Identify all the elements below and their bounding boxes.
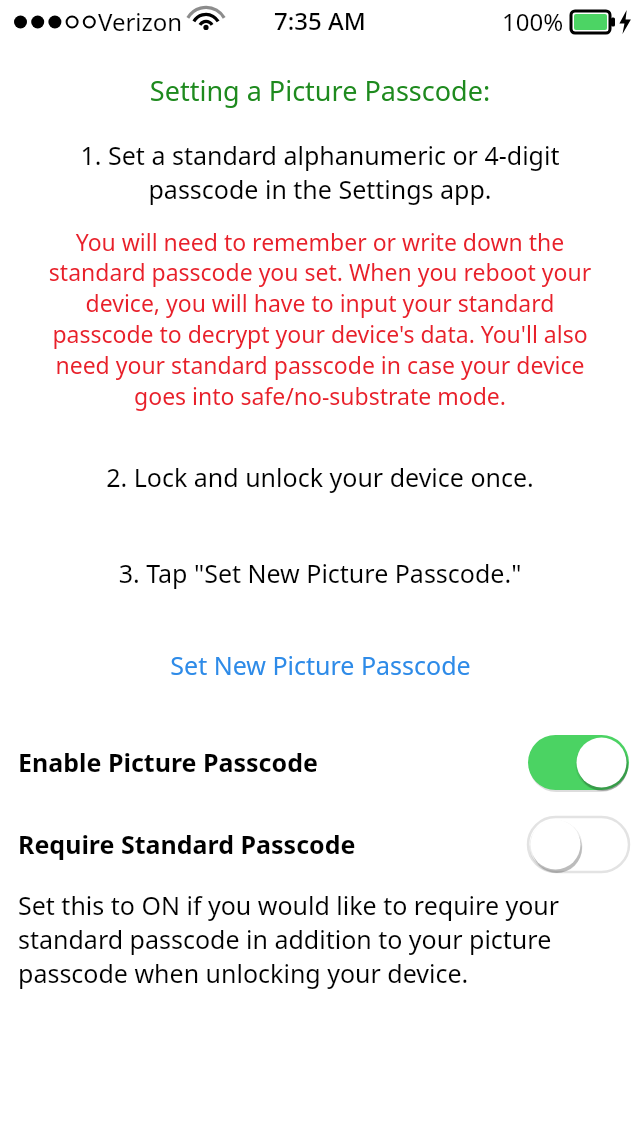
button[interactable]: Require Standard Passcode	[0, 816, 640, 872]
button[interactable]: Toggle off	[528, 817, 629, 872]
button[interactable]: Enable Picture Passcode	[0, 734, 640, 790]
button[interactable]: Set New Picture Passcode	[0, 644, 640, 686]
staticText: Verizon	[98, 5, 183, 38]
staticText: Enable Picture Passcode	[18, 745, 318, 779]
staticText: 3. Tap "Set New Picture Passcode."	[30, 556, 610, 590]
staticText: 7:35 AM	[274, 4, 366, 37]
staticText: Set this to ON if you would like to requ…	[18, 888, 626, 990]
staticText: You will need to remember or write down …	[34, 226, 606, 412]
staticText: Set New Picture Passcode	[170, 648, 471, 682]
staticText: 1. Set a standard alphanumeric or 4-digi…	[38, 138, 602, 206]
button[interactable]: Toggle on	[528, 735, 629, 790]
staticText: Setting a Picture Passcode:	[0, 72, 640, 109]
staticText: 2. Lock and unlock your device once.	[30, 460, 610, 494]
staticText: Require Standard Passcode	[18, 827, 356, 861]
staticText: 100%	[502, 5, 564, 38]
